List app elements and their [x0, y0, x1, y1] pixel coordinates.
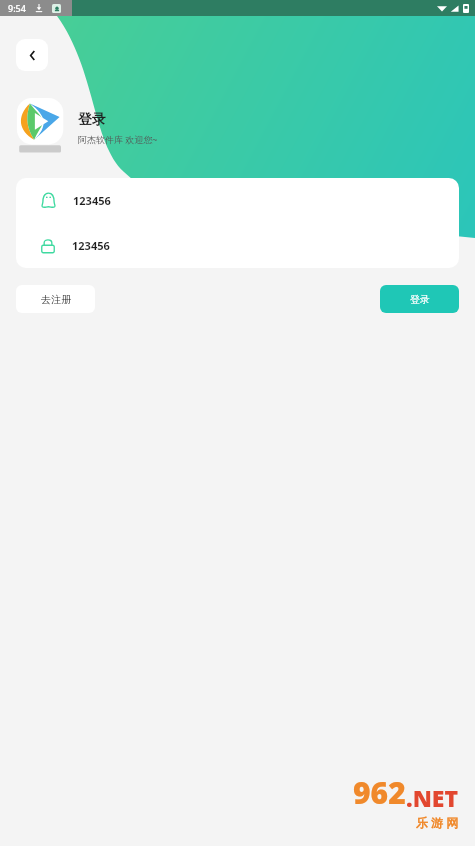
- staticText: .NET: [406, 782, 459, 813]
- staticText: 阿杰软件库 欢迎您~: [78, 133, 158, 145]
- button[interactable]: 123456: [16, 178, 459, 223]
- staticText: 登录: [78, 111, 106, 129]
- button[interactable]: Back: [16, 39, 48, 71]
- staticText: 乐 游 网: [416, 814, 459, 830]
- staticText: 登录: [410, 293, 430, 306]
- staticText: 123456: [72, 238, 110, 253]
- button[interactable]: 123456: [16, 223, 459, 268]
- staticText: 去注册: [41, 293, 71, 306]
- button[interactable]: 去注册: [16, 285, 95, 313]
- staticText: 9:54: [8, 2, 26, 14]
- button[interactable]: 登录: [380, 285, 459, 313]
- staticText: 962: [353, 772, 406, 813]
- staticText: 123456: [73, 193, 111, 208]
